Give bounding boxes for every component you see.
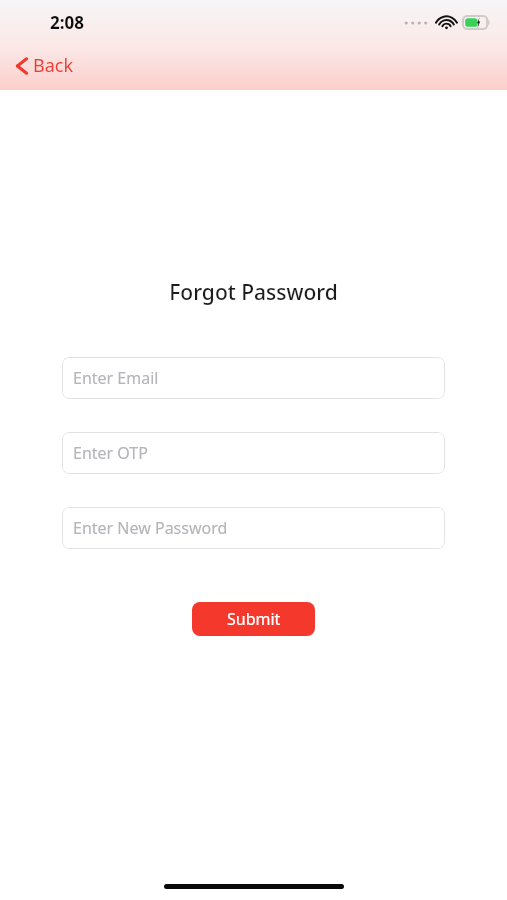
button[interactable]: Enter OTP xyxy=(62,432,445,474)
staticText: Submit xyxy=(227,608,281,630)
staticText: 2:08 xyxy=(50,11,84,34)
staticText: Enter Email xyxy=(73,367,159,389)
staticText: Forgot Password xyxy=(169,278,338,307)
staticText: Enter New Password xyxy=(73,517,228,539)
staticText: Back xyxy=(33,53,74,78)
button[interactable]: Enter New Password xyxy=(62,507,445,549)
button[interactable]: Enter Email xyxy=(62,357,445,399)
button[interactable]: Submit xyxy=(192,602,315,636)
staticText: Enter OTP xyxy=(73,442,148,464)
button[interactable]: Back xyxy=(10,49,80,82)
